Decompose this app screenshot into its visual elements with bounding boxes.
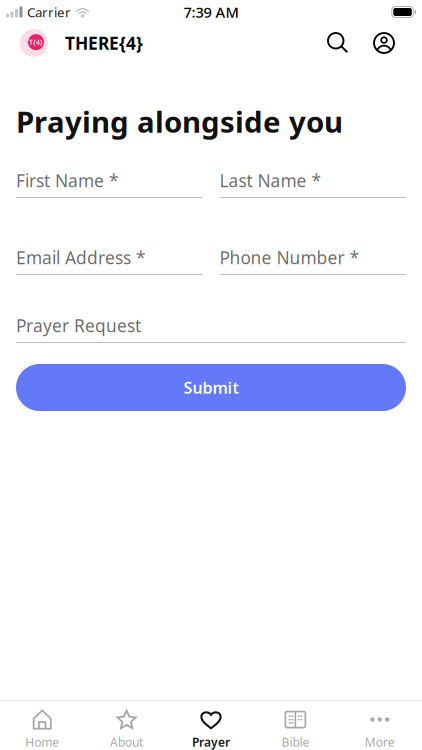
button[interactable]: T{4}	[20, 24, 143, 62]
button[interactable]: About	[84, 701, 169, 750]
staticText: Submit	[183, 377, 238, 398]
staticText: Phone Number *	[219, 246, 359, 269]
staticText: THERE{4}	[65, 31, 143, 54]
staticText: First Name *	[16, 169, 119, 192]
staticText: Home	[25, 734, 59, 750]
button[interactable]: Account	[374, 26, 394, 60]
staticText: Prayer	[192, 734, 230, 750]
staticText: More	[365, 734, 395, 750]
staticText: Prayer Request	[16, 314, 141, 337]
staticText: Bible	[281, 734, 309, 750]
staticText: Last Name *	[219, 169, 321, 192]
button[interactable]: Bible	[253, 701, 338, 750]
staticText: Praying alongside you	[16, 102, 343, 141]
staticText: About	[110, 734, 143, 750]
staticText: T{4}	[29, 38, 43, 47]
button[interactable]: More	[338, 701, 422, 750]
button[interactable]: Home	[0, 701, 84, 750]
staticText: 7:39 AM	[183, 2, 238, 22]
button[interactable]: Submit	[16, 364, 406, 411]
staticText: Email Address *	[16, 246, 146, 269]
button[interactable]: Search	[328, 26, 348, 60]
staticText: Carrier	[27, 3, 71, 21]
button[interactable]: Prayer	[169, 701, 253, 750]
